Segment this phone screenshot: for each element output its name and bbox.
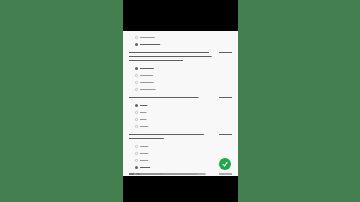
button[interactable]	[129, 79, 232, 85]
button[interactable]	[129, 116, 232, 122]
button[interactable]	[129, 41, 232, 47]
button[interactable]	[129, 123, 232, 129]
button[interactable]	[129, 164, 232, 170]
button[interactable]	[129, 65, 232, 71]
button[interactable]	[129, 86, 232, 92]
button[interactable]	[129, 72, 232, 78]
button[interactable]	[129, 34, 232, 40]
button[interactable]: Submit	[219, 158, 231, 170]
button[interactable]	[129, 109, 232, 115]
button[interactable]	[129, 143, 232, 149]
button[interactable]	[129, 150, 232, 156]
button[interactable]	[129, 102, 232, 108]
button[interactable]	[129, 157, 232, 163]
